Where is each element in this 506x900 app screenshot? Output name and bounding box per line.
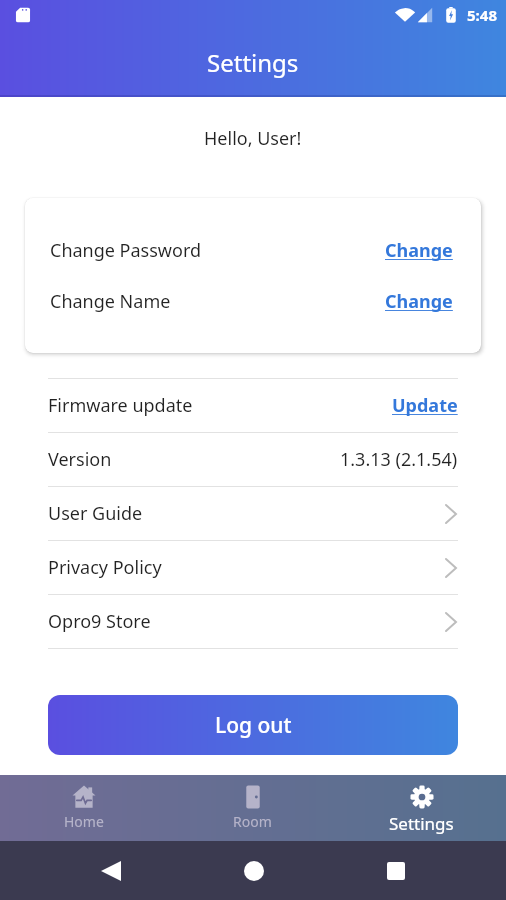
button[interactable]: Change Password xyxy=(50,225,453,276)
button[interactable]: Opro9 Store xyxy=(0,595,506,648)
staticText: Version xyxy=(48,447,112,472)
button[interactable] xyxy=(387,862,405,880)
button[interactable]: Room xyxy=(168,775,337,841)
staticText: Update xyxy=(392,393,458,418)
staticText: Settings xyxy=(389,812,454,835)
staticText: Privacy Policy xyxy=(48,555,162,580)
button[interactable]: Log out xyxy=(48,695,458,755)
staticText: Opro9 Store xyxy=(48,609,151,634)
staticText: Change xyxy=(385,238,453,263)
staticText: Hello, User! xyxy=(204,126,302,151)
button[interactable]: User Guide xyxy=(0,487,506,540)
button[interactable]: Privacy Policy xyxy=(0,541,506,594)
staticText: Settings xyxy=(207,46,299,79)
button[interactable] xyxy=(244,861,264,881)
staticText: Change Password xyxy=(50,238,202,263)
staticText: 5:48 xyxy=(467,5,497,25)
staticText: Change xyxy=(385,289,453,314)
staticText: 1.3.13 (2.1.54) xyxy=(340,447,458,472)
button[interactable]: Version xyxy=(0,433,506,486)
button[interactable]: Change Name xyxy=(50,276,453,327)
button[interactable]: Home xyxy=(0,775,168,841)
staticText: Log out xyxy=(215,711,292,740)
button[interactable]: Settings xyxy=(337,775,506,841)
staticText: Firmware update xyxy=(48,393,193,418)
staticText: Home xyxy=(64,812,104,831)
button[interactable]: Firmware update xyxy=(0,379,506,432)
staticText: User Guide xyxy=(48,501,143,526)
staticText: Change Name xyxy=(50,289,171,314)
staticText: Room xyxy=(233,812,272,831)
button[interactable] xyxy=(101,861,121,881)
